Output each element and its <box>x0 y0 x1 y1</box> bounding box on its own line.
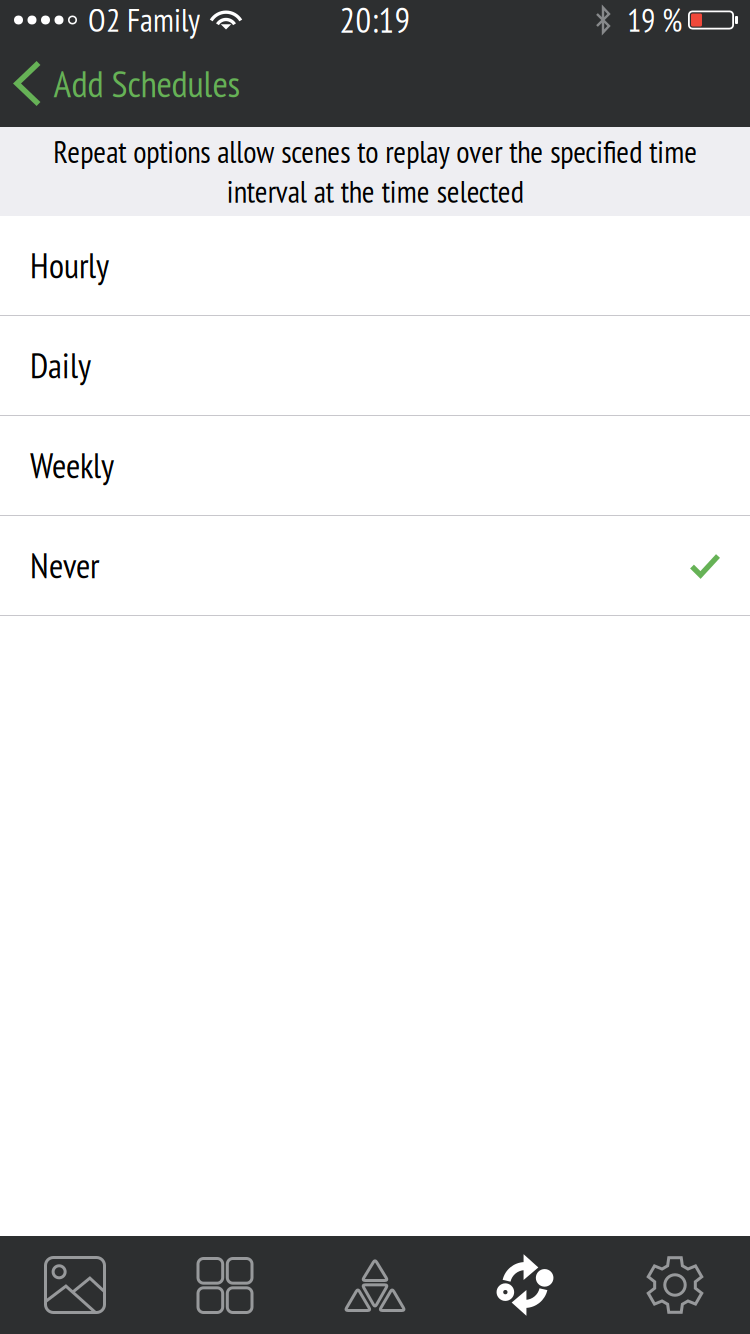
staticText: Daily <box>30 343 91 388</box>
button[interactable]: Weekly <box>0 416 750 516</box>
staticText: Hourly <box>30 243 109 288</box>
staticText: O2 Family <box>88 0 200 41</box>
button[interactable]: Schedules <box>450 1236 600 1334</box>
button[interactable]: Add Schedules <box>0 40 256 127</box>
button[interactable]: Never <box>0 516 750 616</box>
button[interactable]: Groups <box>150 1236 300 1334</box>
staticText: Repeat options allow scenes to replay ov… <box>53 132 697 211</box>
button[interactable]: Scenes <box>0 1236 150 1334</box>
staticText: Add Schedules <box>53 59 240 108</box>
staticText: Never <box>30 543 99 588</box>
button[interactable]: Layouts <box>300 1236 450 1334</box>
button[interactable]: Hourly <box>0 216 750 316</box>
staticText: 20:19 <box>339 0 410 42</box>
staticText: Weekly <box>30 443 114 488</box>
staticText: 19 % <box>627 0 682 41</box>
button[interactable]: Daily <box>0 316 750 416</box>
button[interactable]: Settings <box>600 1236 750 1334</box>
